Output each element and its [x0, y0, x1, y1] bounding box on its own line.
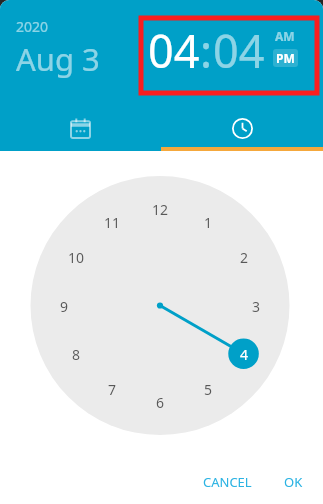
- button[interactable]: Hour 4: [229, 343, 259, 365]
- staticText: 11: [104, 213, 121, 232]
- staticText: PM: [276, 50, 295, 66]
- staticText: :: [200, 20, 213, 81]
- button[interactable]: PM: [273, 49, 298, 67]
- staticText: 2020: [16, 17, 49, 36]
- button[interactable]: AM: [272, 27, 298, 45]
- button[interactable]: OK: [274, 465, 313, 499]
- button[interactable]: Hour 2: [229, 246, 259, 268]
- button[interactable]: Hour 12: [145, 198, 175, 220]
- button[interactable]: Hour 6: [145, 391, 175, 413]
- staticText: 8: [72, 345, 81, 364]
- button[interactable]: Hour 8: [61, 343, 91, 365]
- staticText: 1: [204, 213, 213, 232]
- button[interactable]: 04: [213, 20, 265, 81]
- staticText: CANCEL: [203, 473, 252, 491]
- staticText: 04: [148, 20, 200, 81]
- staticText: 5: [204, 380, 213, 399]
- staticText: 7: [108, 380, 117, 399]
- staticText: 3: [252, 297, 261, 316]
- button[interactable]: Switch to date: [0, 105, 161, 151]
- staticText: 4: [240, 345, 249, 364]
- button[interactable]: Hour 5: [193, 378, 223, 400]
- button[interactable]: 2020: [16, 17, 100, 80]
- staticText: 12: [152, 200, 169, 219]
- staticText: 6: [156, 393, 165, 412]
- staticText: 10: [68, 248, 85, 267]
- button[interactable]: Hour 1: [193, 211, 223, 233]
- button[interactable]: Hour 3: [241, 295, 271, 317]
- button[interactable]: Switch to time: [161, 105, 323, 151]
- staticText: AM: [275, 28, 295, 44]
- button[interactable]: Hour 9: [49, 295, 79, 317]
- staticText: OK: [284, 473, 303, 491]
- button[interactable]: 04: [148, 20, 200, 81]
- button[interactable]: Hour 7: [97, 378, 127, 400]
- staticText: 04: [213, 20, 265, 81]
- button[interactable]: Hour 10: [61, 246, 91, 268]
- staticText: 9: [60, 297, 69, 316]
- staticText: Aug 3: [16, 38, 100, 80]
- staticText: 2: [240, 248, 249, 267]
- button[interactable]: CANCEL: [193, 465, 262, 499]
- button[interactable]: Hour 11: [97, 211, 127, 233]
